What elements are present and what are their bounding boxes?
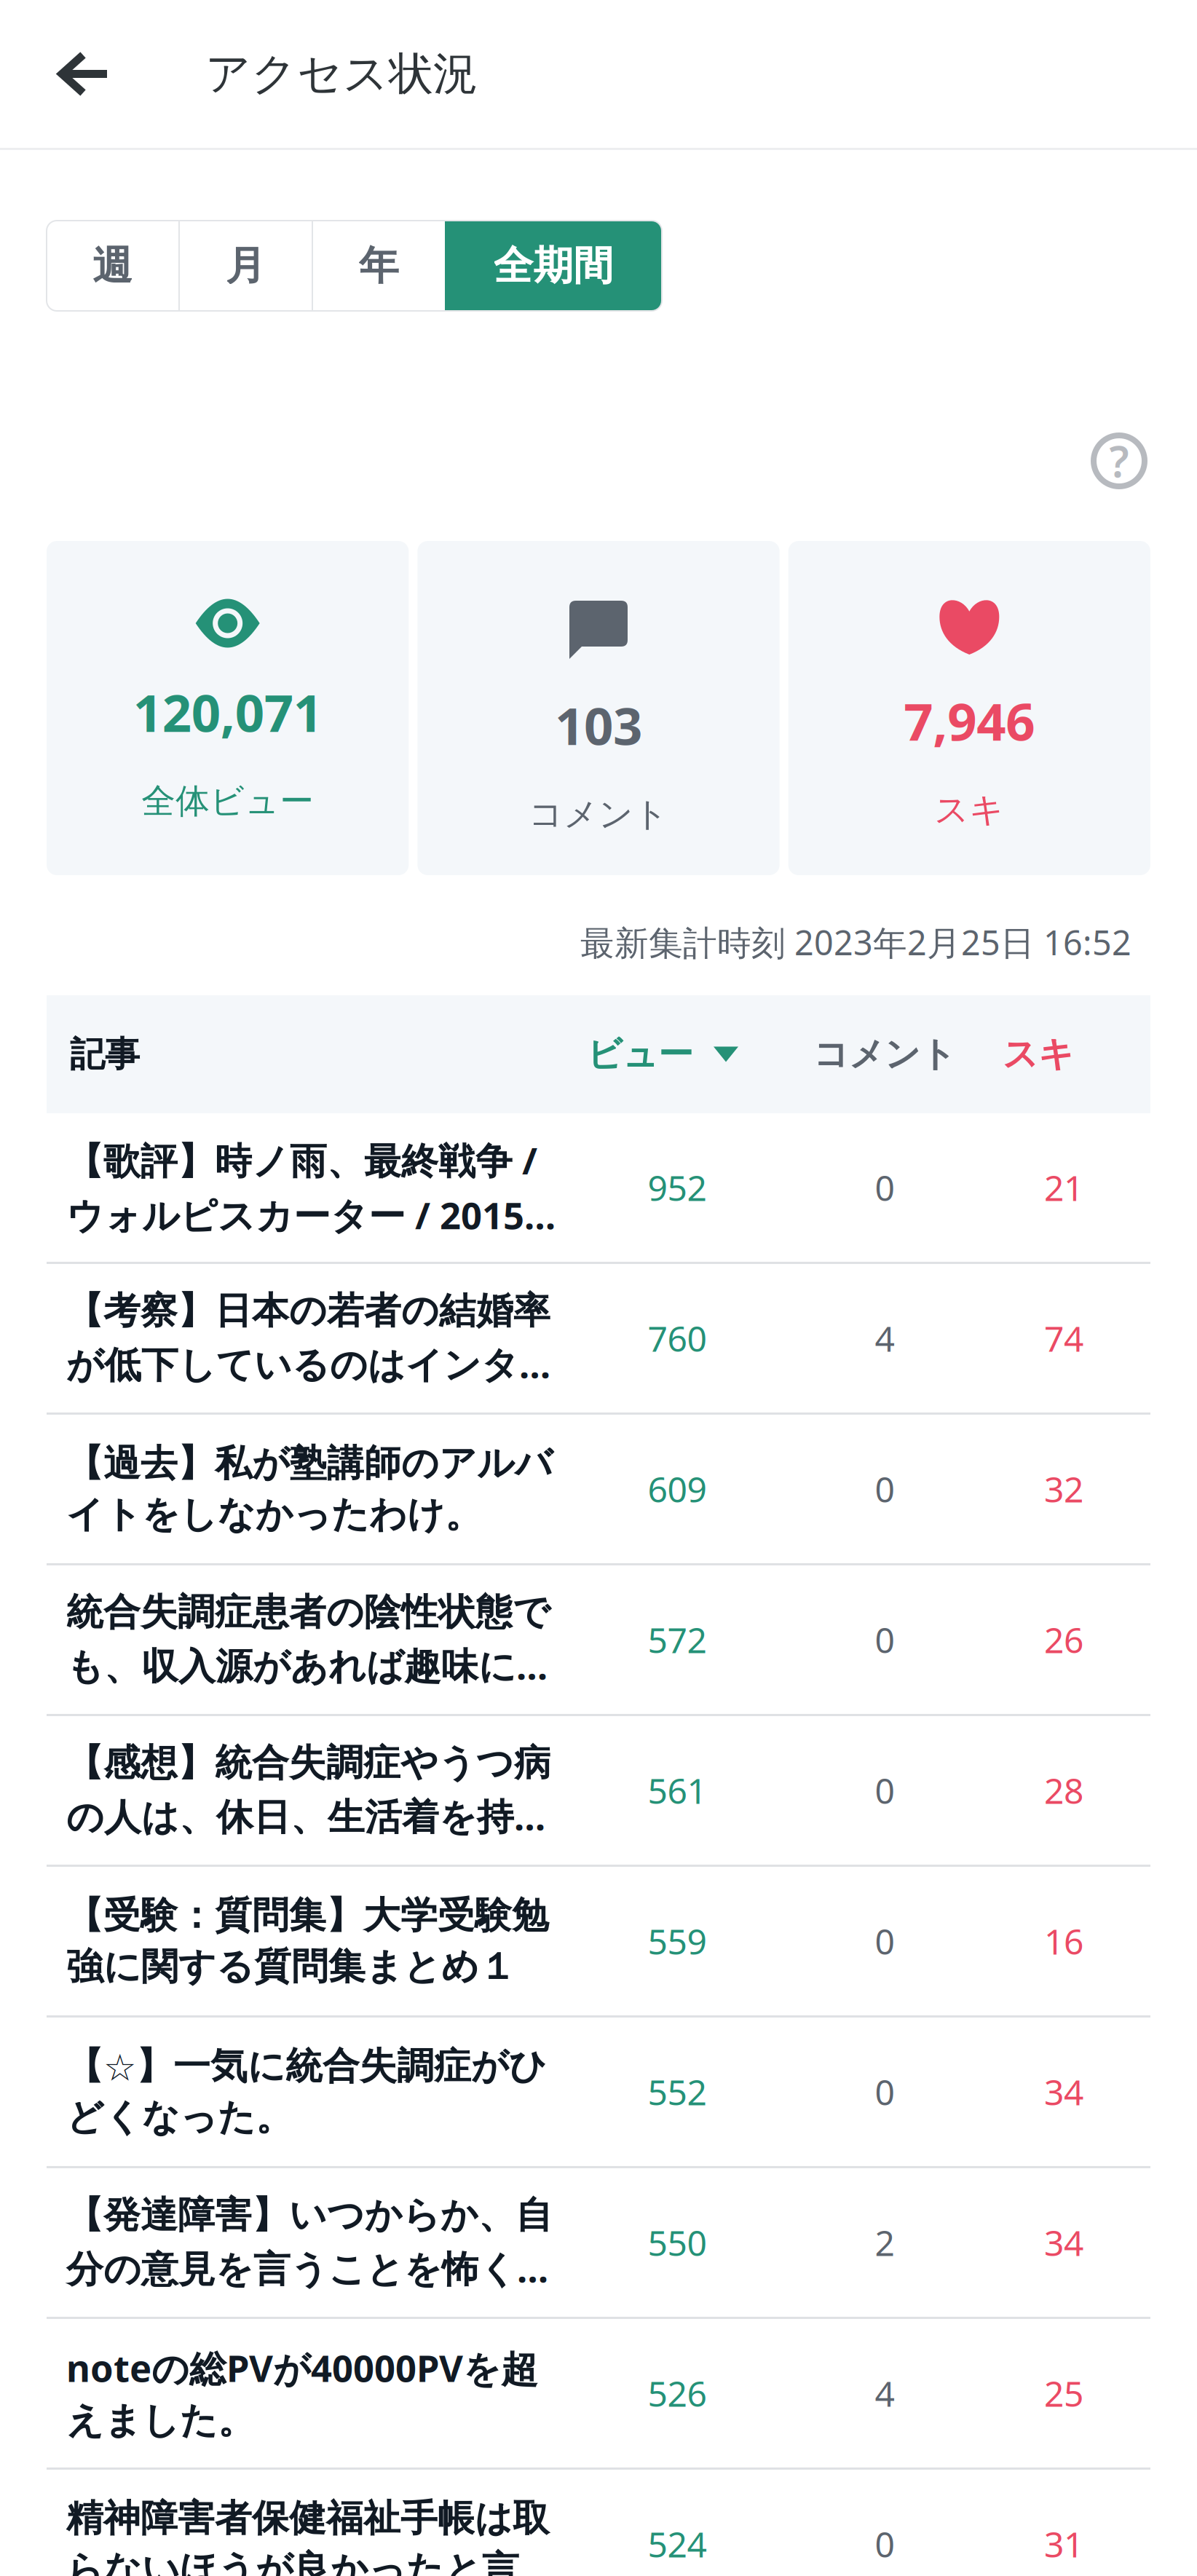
staticText: 74: [1044, 1315, 1083, 1361]
staticText: 32: [1044, 1466, 1083, 1512]
staticText: 4: [875, 1315, 894, 1361]
staticText: 526: [648, 2370, 707, 2416]
button[interactable]: 戻る: [0, 3, 169, 145]
staticText: 0: [875, 2069, 894, 2115]
staticText: 572: [648, 1616, 707, 1663]
staticText: 559: [648, 1918, 707, 1964]
staticText: 552: [648, 2069, 707, 2115]
staticText: が低下しているのはインタ…: [66, 1339, 550, 1388]
staticText: 精神障害者保健福祉手帳は取: [66, 2496, 550, 2541]
staticText: 524: [648, 2521, 707, 2567]
staticText: えました。: [66, 2398, 255, 2443]
staticText: 0: [875, 1767, 894, 1814]
staticText: 4: [875, 2370, 894, 2416]
staticText: noteの総PVが40000PVを超: [66, 2343, 538, 2392]
button[interactable]: 統合失調症患者の陰性状態で: [47, 1565, 1150, 1716]
staticText: 28: [1044, 1767, 1083, 1814]
button[interactable]: 精神障害者保健福祉手帳は取: [47, 2470, 1150, 2576]
button[interactable]: 【感想】統合失調症やうつ病: [47, 1716, 1150, 1867]
staticText: 7,946: [904, 687, 1035, 755]
staticText: 31: [1044, 2521, 1083, 2567]
staticText: スキ: [1003, 1033, 1074, 1076]
button[interactable]: ヘルプ: [1084, 432, 1154, 490]
staticText: 120,071: [133, 678, 322, 746]
button[interactable]: 【発達障害】いつからか、自: [47, 2168, 1150, 2319]
staticText: 0: [875, 1918, 894, 1964]
staticText: 全期間: [493, 241, 613, 290]
staticText: 月: [226, 241, 266, 290]
staticText: 0: [875, 2521, 894, 2567]
staticText: の人は、休日、生活着を持…: [66, 1791, 545, 1840]
staticText: 週: [92, 241, 133, 290]
button[interactable]: 【歌評】時ノ雨、最終戦争 /: [47, 1113, 1150, 1264]
staticText: 34: [1044, 2219, 1083, 2266]
staticText: 強に関する質問集まとめ１: [66, 1944, 516, 1989]
button[interactable]: noteの総PVが40000PVを超: [47, 2319, 1150, 2470]
button[interactable]: 全期間: [445, 221, 662, 311]
staticText: 0: [875, 1466, 894, 1512]
staticText: 統合失調症患者の陰性状態で: [66, 1590, 550, 1635]
staticText: 2: [875, 2219, 894, 2266]
staticText: 【受験：質問集】大学受験勉: [66, 1893, 549, 1938]
staticText: らないほうが良かったと言: [66, 2547, 519, 2576]
staticText: 25: [1044, 2370, 1083, 2416]
staticText: スキ: [934, 789, 1004, 831]
staticText: 0: [875, 1164, 894, 1211]
staticText: ウォルピスカーター / 2015…: [66, 1190, 556, 1239]
staticText: 全体ビュー: [141, 780, 314, 822]
staticText: 【考察】日本の若者の結婚率: [66, 1288, 550, 1333]
staticText: コメント: [529, 793, 668, 835]
button[interactable]: 月: [180, 221, 312, 311]
staticText: ビュー: [587, 1033, 693, 1076]
button[interactable]: 年: [313, 221, 445, 311]
staticText: 952: [648, 1164, 707, 1211]
staticText: 【感想】統合失調症やうつ病: [66, 1740, 551, 1786]
button[interactable]: 【☆】一気に統合失調症がひ: [47, 2018, 1150, 2168]
button[interactable]: 【受験：質問集】大学受験勉: [47, 1867, 1150, 2018]
staticText: 年: [359, 241, 399, 290]
staticText: 16: [1044, 1918, 1083, 1964]
staticText: 550: [648, 2219, 707, 2266]
staticText: 760: [648, 1315, 707, 1361]
staticText: 21: [1044, 1164, 1083, 1211]
button[interactable]: 【過去】私が塾講師のアルバ: [47, 1415, 1150, 1565]
staticText: 【歌評】時ノ雨、最終戦争 /: [66, 1136, 537, 1185]
staticText: 561: [648, 1767, 707, 1814]
button[interactable]: 【考察】日本の若者の結婚率: [47, 1264, 1150, 1415]
staticText: ?: [1109, 432, 1129, 489]
staticText: 【過去】私が塾講師のアルバ: [66, 1441, 553, 1486]
staticText: どくなった。: [66, 2095, 293, 2140]
staticText: 【☆】一気に統合失調症がひ: [66, 2044, 547, 2089]
staticText: 34: [1044, 2069, 1083, 2115]
button[interactable]: 週: [47, 221, 178, 311]
staticText: 26: [1044, 1616, 1083, 1663]
button[interactable]: ビュー: [562, 1033, 792, 1076]
staticText: も、収入源があれば趣味に…: [66, 1641, 548, 1690]
staticText: 103: [555, 691, 642, 759]
staticText: 0: [875, 1616, 894, 1663]
staticText: 【発達障害】いつからか、自: [66, 2192, 553, 2238]
staticText: 分の意見を言うことを怖く…: [66, 2244, 548, 2293]
staticText: アクセス状況: [205, 46, 478, 101]
staticText: コメント: [813, 1033, 956, 1076]
staticText: 最新集計時刻 2023年2月25日 16:52: [580, 920, 1131, 965]
staticText: イトをしなかったわけ。: [66, 1492, 482, 1537]
staticText: 記事: [70, 1033, 140, 1076]
staticText: 609: [648, 1466, 707, 1512]
